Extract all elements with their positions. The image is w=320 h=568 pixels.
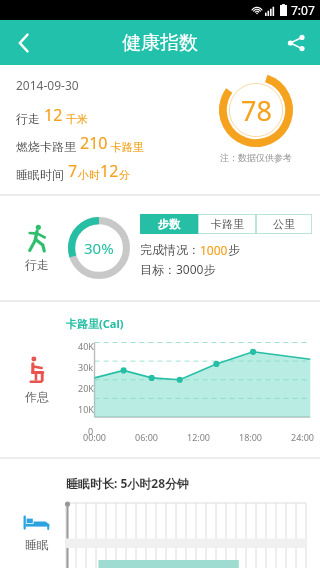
staticText: 卡路里(Cal) xyxy=(66,316,124,331)
staticText: 2014-09-30 xyxy=(16,77,79,93)
staticText: 1000 xyxy=(200,242,228,258)
staticText: 小时 xyxy=(78,168,100,182)
staticText: 12:00 xyxy=(187,431,211,443)
staticText: 7 xyxy=(68,160,78,182)
button[interactable]: Back xyxy=(0,20,48,65)
staticText: 7:07 xyxy=(291,2,315,18)
staticText: 卡路里 xyxy=(211,217,244,231)
staticText: 步数 xyxy=(158,217,180,231)
staticText: 行走 xyxy=(16,110,44,126)
staticText: 12 xyxy=(44,104,63,126)
staticText: 06:00 xyxy=(135,431,159,443)
staticText: 00:00 xyxy=(83,431,107,443)
staticText: 30k xyxy=(78,361,94,373)
button[interactable]: 卡路里 xyxy=(198,214,256,234)
staticText: 12 xyxy=(100,160,119,182)
staticText: 0 xyxy=(88,425,94,437)
button[interactable]: 步数 xyxy=(140,214,198,234)
staticText: 10K xyxy=(78,403,94,415)
staticText: 210 xyxy=(80,132,108,154)
staticText: 睡眠 xyxy=(25,537,49,552)
staticText: 燃烧卡路里 xyxy=(16,138,80,154)
staticText: 分 xyxy=(119,168,130,182)
button[interactable]: 公里 xyxy=(256,214,312,234)
staticText: 注：数据仅供参考 xyxy=(220,152,292,163)
button[interactable]: Share xyxy=(272,20,320,65)
staticText: 完成情况： xyxy=(140,242,200,257)
staticText: 24:00 xyxy=(291,431,315,443)
staticText: 卡路里 xyxy=(108,139,144,154)
staticText: 步 xyxy=(228,242,240,257)
staticText: 40K xyxy=(78,340,94,352)
staticText: 千米 xyxy=(63,111,88,126)
staticText: 30% xyxy=(84,238,114,258)
staticText: 作息 xyxy=(25,389,49,404)
staticText: 公里 xyxy=(273,217,295,231)
staticText: 睡眠时间 xyxy=(16,166,68,182)
staticText: 20K xyxy=(78,382,94,394)
staticText: 目标：3000步 xyxy=(140,261,216,277)
staticText: 行走 xyxy=(25,257,49,272)
staticText: 睡眠时长: 5小时28分钟 xyxy=(66,475,190,491)
staticText: 18:00 xyxy=(239,431,263,443)
staticText: 78 xyxy=(241,92,272,129)
staticText: 健康指数 xyxy=(122,31,198,55)
